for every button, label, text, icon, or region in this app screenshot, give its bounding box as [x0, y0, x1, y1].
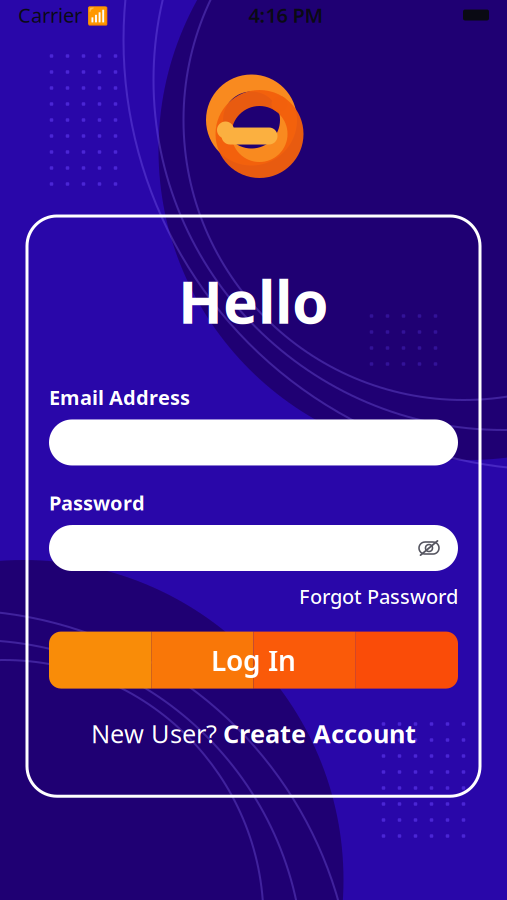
- staticText: Carrier: [18, 2, 82, 28]
- staticText: Create Account: [223, 717, 416, 750]
- button[interactable]: Log In: [49, 632, 458, 689]
- staticText: Log In: [211, 641, 296, 679]
- staticText: New User?: [91, 717, 217, 750]
- staticText: 📶: [82, 3, 109, 26]
- staticText: Forgot Password: [299, 583, 458, 610]
- staticText: Email Address: [49, 384, 190, 410]
- button[interactable]: Forgot Password: [299, 583, 458, 610]
- button[interactable]: Show password: [416, 535, 458, 561]
- staticText: 4:16 PM: [248, 2, 323, 28]
- staticText: Password: [49, 489, 145, 516]
- staticText: Hello: [178, 262, 329, 340]
- button[interactable]: New User?: [91, 717, 416, 750]
